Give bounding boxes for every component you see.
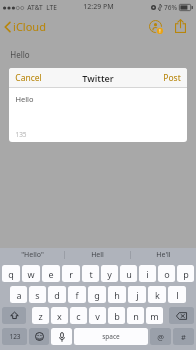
staticText: x xyxy=(57,310,62,322)
button[interactable]: He'll xyxy=(131,248,196,262)
staticText: g xyxy=(94,289,100,301)
staticText: e xyxy=(48,268,54,280)
staticText: 135 xyxy=(15,130,27,139)
button[interactable]: t xyxy=(82,265,99,282)
button[interactable]: Hell xyxy=(65,248,130,262)
button[interactable]: d xyxy=(48,286,66,303)
staticText: m xyxy=(150,310,159,322)
staticText: Hell xyxy=(91,250,104,260)
staticText: LTE xyxy=(46,3,57,12)
button[interactable]: g xyxy=(88,286,106,303)
staticText: z xyxy=(38,310,43,322)
button[interactable]: r xyxy=(62,265,80,282)
button[interactable]: j xyxy=(128,286,146,303)
button[interactable]: i xyxy=(139,265,156,282)
staticText: a xyxy=(16,289,22,301)
staticText: d xyxy=(54,289,60,301)
button[interactable]: u xyxy=(120,265,137,282)
button[interactable]: p xyxy=(177,265,194,282)
staticText: space xyxy=(102,332,120,341)
staticText: He'll xyxy=(156,250,171,260)
button[interactable]: x xyxy=(51,307,68,324)
button[interactable]: Backspace xyxy=(169,307,194,324)
button[interactable]: q xyxy=(2,265,20,282)
staticText: k xyxy=(155,289,160,301)
staticText: @ xyxy=(157,332,164,342)
button[interactable]: w xyxy=(22,265,40,282)
staticText: w xyxy=(27,268,35,280)
button[interactable]: Collaborators xyxy=(145,16,166,37)
button[interactable]: Share xyxy=(171,15,190,37)
staticText: 12:29 PM xyxy=(83,2,114,12)
button[interactable]: y xyxy=(101,265,118,282)
staticText: p xyxy=(183,268,189,280)
button[interactable]: s xyxy=(29,286,46,303)
staticText: q xyxy=(8,268,14,280)
staticText: f xyxy=(75,289,79,301)
button[interactable]: e xyxy=(42,265,60,282)
staticText: 123 xyxy=(9,332,21,341)
button[interactable]: a xyxy=(10,286,27,303)
button[interactable]: Numbers xyxy=(2,328,27,345)
button[interactable]: l xyxy=(168,286,186,303)
button[interactable]: k xyxy=(148,286,166,303)
button[interactable]: v xyxy=(89,307,106,324)
button[interactable]: n xyxy=(127,307,144,324)
staticText: v xyxy=(95,310,100,322)
button[interactable]: Post xyxy=(157,69,187,87)
staticText: # xyxy=(181,332,186,342)
button[interactable]: Emoji xyxy=(29,328,49,345)
button[interactable]: f xyxy=(68,286,86,303)
staticText: h xyxy=(114,289,120,301)
staticText: y xyxy=(107,268,112,280)
staticText: o xyxy=(164,268,170,280)
staticText: i xyxy=(146,268,149,280)
button[interactable]: b xyxy=(108,307,125,324)
staticText: u xyxy=(126,268,132,280)
staticText: Post xyxy=(163,72,181,84)
staticText: Hello xyxy=(10,49,30,60)
button[interactable]: iCloud xyxy=(0,16,52,37)
staticText: iCloud xyxy=(13,19,46,34)
staticText: Hello xyxy=(15,94,34,104)
staticText: Twitter xyxy=(82,72,114,84)
staticText: l xyxy=(176,289,179,301)
button[interactable]: At sign xyxy=(150,328,171,345)
staticText: j xyxy=(136,289,139,301)
button[interactable]: h xyxy=(108,286,126,303)
staticText: b xyxy=(114,310,120,322)
button[interactable]: Dictation xyxy=(51,328,72,345)
staticText: Cancel xyxy=(15,72,42,84)
button[interactable]: c xyxy=(70,307,87,324)
staticText: c xyxy=(76,310,81,322)
button[interactable]: Hash xyxy=(173,328,194,345)
button[interactable]: z xyxy=(32,307,49,324)
button[interactable]: "Hello" xyxy=(0,248,64,262)
staticText: s xyxy=(35,289,40,301)
staticText: 76% xyxy=(164,3,177,12)
button[interactable]: Shift xyxy=(2,307,26,324)
staticText: n xyxy=(133,310,139,322)
staticText: r xyxy=(69,268,73,280)
staticText: t xyxy=(89,268,93,280)
button[interactable]: m xyxy=(146,307,163,324)
button[interactable]: space xyxy=(74,328,148,345)
button[interactable]: o xyxy=(158,265,175,282)
staticText: AT&T xyxy=(27,3,43,12)
staticText: "Hello" xyxy=(21,250,44,260)
button[interactable]: Cancel xyxy=(9,69,48,87)
